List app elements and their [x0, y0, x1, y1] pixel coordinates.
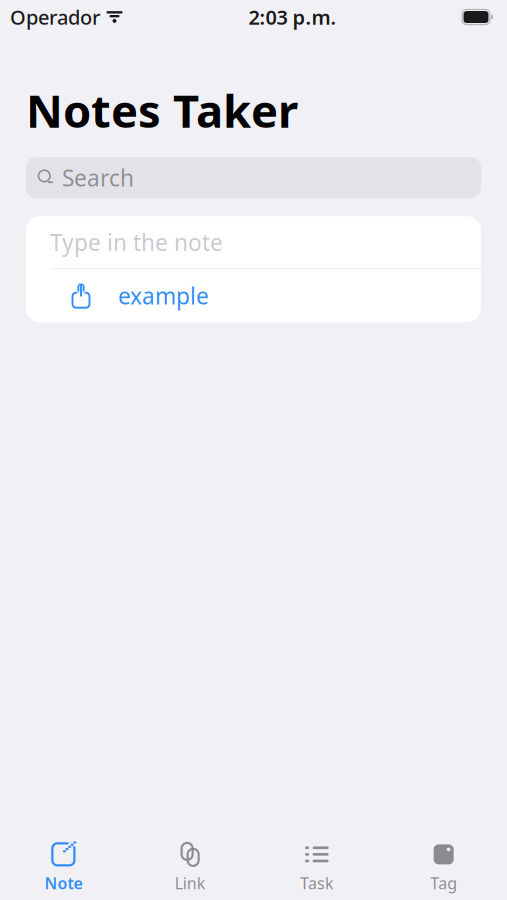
- button[interactable]: example: [26, 269, 481, 322]
- staticText: Type in the note: [50, 227, 223, 257]
- staticText: Operador: [10, 4, 100, 30]
- button[interactable]: Search: [26, 157, 481, 198]
- button[interactable]: Link: [127, 840, 254, 894]
- staticText: example: [118, 281, 209, 311]
- staticText: Tag: [430, 872, 457, 894]
- staticText: Notes Taker: [26, 80, 298, 140]
- button[interactable]: Note: [0, 840, 127, 894]
- button[interactable]: Task: [253, 840, 380, 894]
- button[interactable]: Type in the note: [26, 216, 481, 268]
- staticText: Note: [44, 872, 82, 894]
- staticText: Link: [175, 872, 206, 894]
- staticText: Search: [62, 163, 134, 193]
- staticText: Task: [300, 872, 334, 894]
- staticText: 2:03 p.m.: [248, 4, 336, 30]
- button[interactable]: Tag: [380, 840, 507, 894]
